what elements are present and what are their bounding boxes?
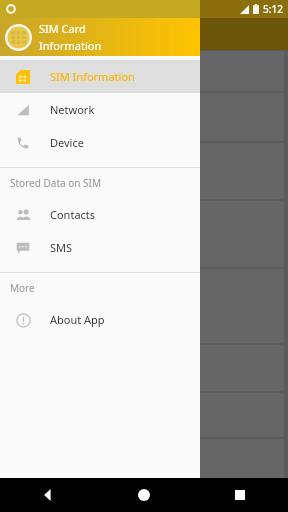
staticText: Stored Data on SIM — [10, 176, 101, 190]
button[interactable]: Recent apps — [192, 478, 288, 512]
button[interactable]: SMS — [0, 231, 200, 264]
staticText: SMS — [50, 240, 73, 255]
staticText: SIM Card — [39, 21, 86, 36]
staticText: 5:12 — [263, 2, 283, 16]
button[interactable]: SIM Information — [0, 60, 200, 93]
button[interactable]: Network — [0, 93, 200, 126]
button[interactable]: Back — [0, 478, 96, 512]
button[interactable]: Contacts — [0, 198, 200, 231]
staticText: Device — [50, 135, 84, 150]
staticText: More — [10, 281, 35, 295]
button[interactable]: Device — [0, 126, 200, 159]
staticText: About App — [50, 312, 105, 327]
staticText: Information — [39, 38, 102, 53]
button[interactable]: Home — [96, 478, 192, 512]
staticText: Network — [50, 102, 95, 117]
staticText: SIM Information — [50, 69, 135, 84]
staticText: Contacts — [50, 207, 96, 222]
button[interactable]: About App — [0, 303, 200, 336]
